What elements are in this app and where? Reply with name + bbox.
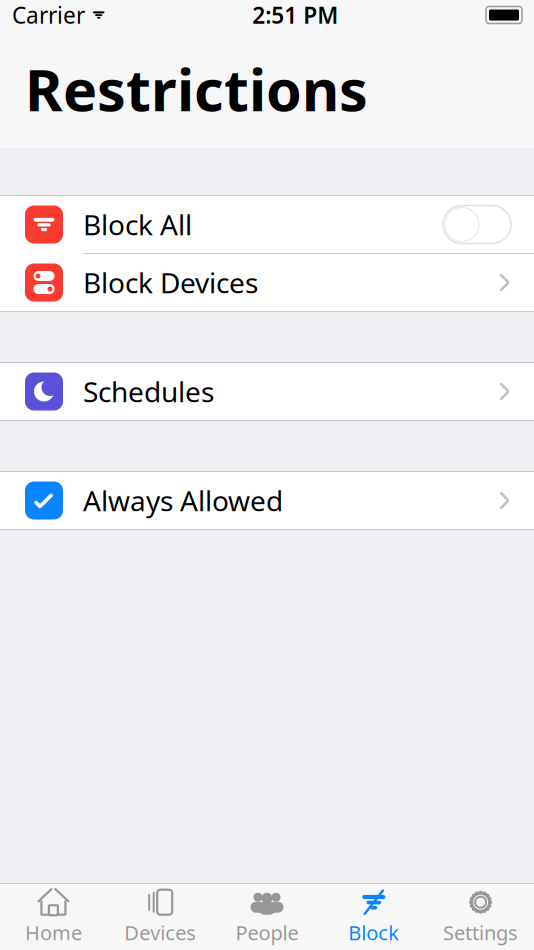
staticText: Settings — [443, 919, 518, 946]
staticText: Block — [348, 919, 399, 946]
staticText: Devices — [124, 919, 196, 946]
staticText: Block All — [83, 206, 192, 243]
staticText: People — [235, 919, 298, 946]
staticText: Always Allowed — [83, 482, 283, 519]
staticText: Restrictions — [25, 51, 368, 127]
staticText: Block Devices — [83, 264, 258, 301]
staticText: Carrier — [12, 0, 85, 30]
staticText: Schedules — [83, 373, 214, 410]
button[interactable]: People — [214, 884, 320, 950]
button[interactable]: Block — [320, 884, 427, 950]
button[interactable]: Schedules — [0, 363, 534, 420]
button[interactable]: Always Allowed — [0, 472, 534, 529]
button[interactable]: Block All — [0, 196, 534, 253]
button[interactable]: Home — [0, 884, 107, 950]
button[interactable]: Devices — [107, 884, 214, 950]
staticText: 2:51 PM — [252, 0, 338, 30]
staticText: Home — [25, 919, 82, 946]
button[interactable]: Settings — [427, 884, 534, 950]
button[interactable]: Block Devices — [0, 254, 534, 311]
